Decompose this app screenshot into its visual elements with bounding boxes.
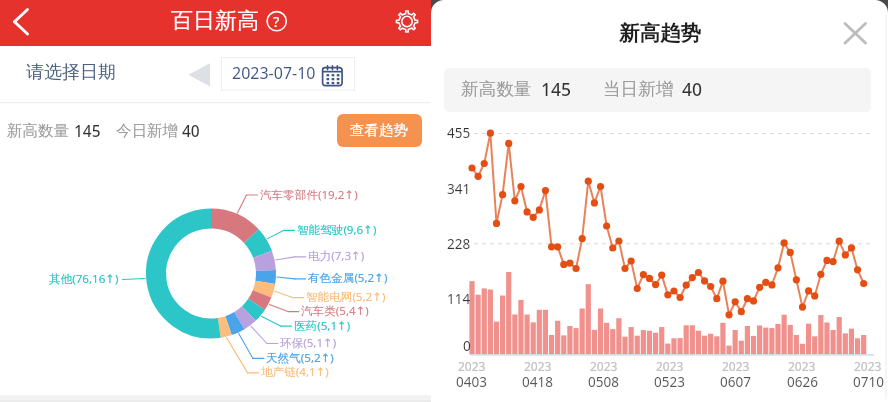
staticText: 40 [182, 120, 200, 141]
staticText: 341 [447, 180, 471, 198]
staticText: 0403 [456, 373, 487, 391]
staticText: 2023 [854, 358, 882, 374]
staticText: 2023 [722, 358, 750, 374]
staticText: 百日新高 [171, 7, 259, 35]
staticText: 0 [463, 337, 471, 355]
staticText: 2023 [458, 358, 486, 374]
staticText: 新高数量 [7, 121, 69, 141]
staticText: 2023 [590, 358, 618, 374]
staticText: 0607 [720, 373, 751, 391]
staticText: 其他(76,16↑) [49, 271, 119, 287]
staticText: 天然气(5,2↑) [266, 350, 334, 366]
staticText: 今日新增 [116, 121, 178, 141]
staticText: 114 [447, 290, 471, 308]
staticText: 医药(5,1↑) [294, 318, 351, 334]
staticText: 地产链(4,1↑) [261, 364, 329, 380]
staticText: 智能驾驶(9,6↑) [297, 222, 377, 238]
staticText: 2023 [524, 358, 552, 374]
staticText: 2023-07-10 [232, 62, 316, 84]
staticText: 有色金属(5,2↑) [308, 270, 388, 286]
staticText: 新高趋势 [619, 20, 701, 46]
staticText: 145 [541, 77, 572, 101]
button[interactable] [337, 114, 422, 147]
button[interactable]: 帮助 [264, 8, 290, 34]
staticText: 当日新增 [603, 78, 674, 100]
staticText: 0626 [787, 373, 818, 391]
staticText: 0418 [522, 373, 553, 391]
staticText: 40 [682, 77, 703, 101]
staticText: 0508 [588, 373, 619, 391]
staticText: 145 [74, 120, 101, 141]
staticText: 查看趋势 [350, 121, 408, 139]
staticText: 0523 [654, 373, 685, 391]
staticText: 455 [447, 124, 471, 142]
staticText: ? [273, 11, 280, 31]
staticText: 电力(7,3↑) [308, 248, 365, 264]
button[interactable]: 设置 [388, 2, 428, 44]
staticText: 汽车类(5,4↑) [301, 303, 369, 319]
button[interactable]: 关闭 [838, 16, 873, 51]
button[interactable] [221, 57, 355, 91]
staticText: 2023 [656, 358, 684, 374]
staticText: 请选择日期 [26, 61, 116, 84]
staticText: 2023 [788, 358, 816, 374]
staticText: 环保(5,1↑) [280, 335, 337, 351]
staticText: 新高数量 [461, 78, 532, 100]
staticText: 228 [447, 235, 471, 253]
staticText: 汽车零部件(19,2↑) [260, 187, 358, 203]
button[interactable]: 返回 [2, 2, 42, 44]
staticText: 智能电网(5,2↑) [306, 289, 386, 305]
staticText: 0710 [853, 373, 884, 391]
